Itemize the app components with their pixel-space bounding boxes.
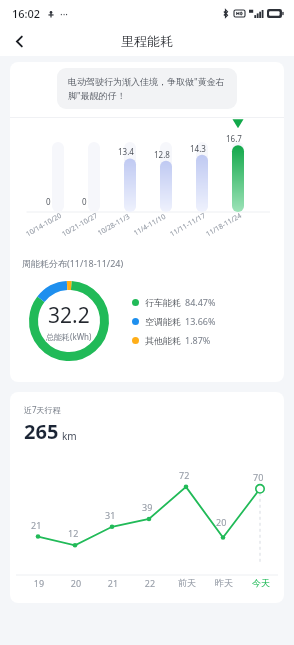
staticText: 0 [82, 196, 87, 207]
staticText: km [62, 429, 77, 443]
staticText: 总能耗(kWh) [46, 331, 92, 342]
staticText: 72 [179, 469, 190, 481]
staticText: 84.47% [185, 296, 216, 308]
staticText: 11/4-11/10 [132, 212, 168, 238]
staticText: 21 [103, 577, 123, 589]
staticText: 周能耗分布(11/18-11/24) [22, 257, 124, 269]
staticText: 10/14-10/20 [24, 211, 64, 239]
staticText: 其他能耗 [145, 335, 181, 346]
staticText: 32.2 [48, 301, 90, 330]
staticText: 空调能耗 [145, 316, 181, 327]
staticText: 前天 [177, 577, 197, 588]
staticText: 11/11-11/17 [168, 211, 208, 239]
staticText: 1.87% [185, 334, 211, 346]
staticText: 电动驾驶行为渐入佳境，争取做"黄金右脚"最靓的仔！ [68, 75, 226, 102]
staticText: 昨天 [214, 577, 234, 588]
staticText: 70 [253, 471, 264, 483]
staticText: 39 [142, 501, 153, 513]
staticText: 19 [29, 577, 49, 589]
staticText: 16.7 [226, 133, 242, 144]
staticText: ··· [60, 7, 69, 21]
staticText: 14.3 [190, 143, 206, 154]
button[interactable]: Back [4, 26, 34, 56]
staticText: 265 [24, 418, 59, 445]
staticText: 13.66% [185, 315, 216, 327]
staticText: 13.4 [118, 146, 134, 157]
staticText: 12 [68, 527, 79, 539]
staticText: 10/21-10/27 [60, 211, 100, 239]
staticText: 16:02 [12, 6, 41, 21]
staticText: 20 [216, 516, 227, 528]
staticText: 10/28-11/3 [96, 212, 132, 238]
staticText: 22 [140, 577, 160, 589]
staticText: 近7天行程 [24, 404, 61, 415]
staticText: 20 [66, 577, 86, 589]
staticText: 行车能耗 [145, 297, 181, 308]
staticText: 11/18-11/24 [204, 211, 244, 239]
staticText: 里程能耗 [121, 33, 173, 49]
staticText: 今天 [251, 577, 271, 588]
staticText: 31 [105, 509, 116, 521]
staticText: 21 [31, 519, 42, 531]
staticText: 12.8 [154, 149, 170, 160]
staticText: 0 [46, 196, 51, 207]
